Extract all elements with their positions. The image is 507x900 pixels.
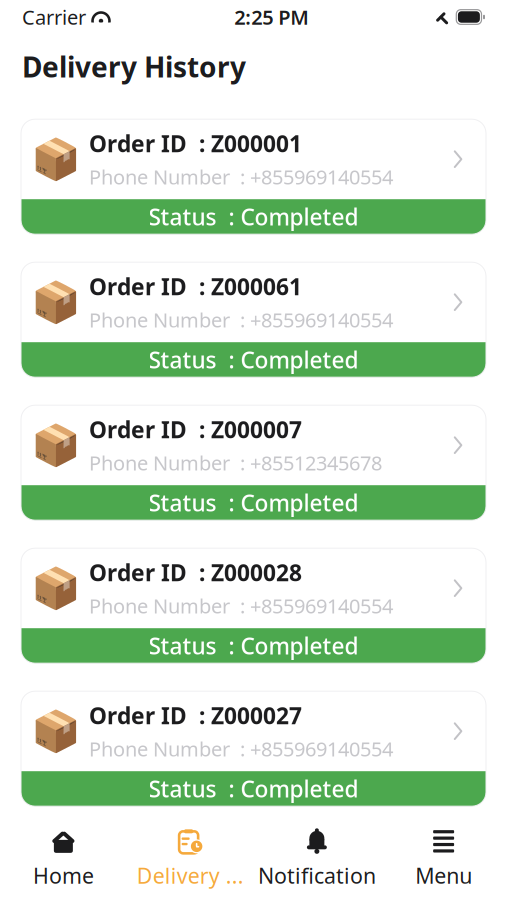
button[interactable]: Notification — [253, 818, 380, 900]
staticText: Status : Completed — [148, 631, 358, 661]
staticText: Phone Number : +855969140554 — [89, 735, 393, 762]
staticText: Order ID : Z000007 — [89, 414, 302, 444]
button[interactable]: Delivery ... — [127, 818, 254, 900]
staticText: Status : Completed — [148, 774, 358, 804]
button[interactable]: 📦 — [21, 548, 486, 663]
button[interactable]: 📦 — [21, 119, 486, 234]
staticText: 📦 — [31, 279, 81, 325]
staticText: Order ID : Z000061 — [89, 271, 302, 301]
staticText: 📦 — [31, 708, 81, 754]
staticText: 📦 — [31, 422, 81, 468]
staticText: Carrier — [22, 4, 86, 30]
staticText: Menu — [415, 861, 472, 890]
button[interactable]: Menu — [380, 818, 507, 900]
staticText: Status : Completed — [148, 488, 358, 518]
staticText: Order ID : Z000028 — [89, 557, 302, 587]
staticText: Phone Number : +855969140554 — [89, 163, 393, 190]
staticText: Phone Number : +855969140554 — [89, 592, 393, 619]
staticText: 📦 — [31, 136, 81, 182]
staticText: Order ID : Z000001 — [89, 128, 302, 158]
staticText: Notification — [258, 861, 376, 890]
staticText: Home — [33, 861, 94, 890]
button[interactable]: 📦 — [21, 405, 486, 520]
staticText: Phone Number : +85512345678 — [89, 449, 382, 476]
staticText: Status : Completed — [148, 345, 358, 375]
staticText: Order ID : Z000027 — [89, 700, 302, 730]
button[interactable]: Home — [0, 818, 127, 900]
staticText: Delivery History — [22, 48, 246, 85]
staticText: 2:25 PM — [234, 4, 309, 30]
button[interactable]: 📦 — [21, 691, 486, 806]
staticText: Delivery ... — [137, 861, 244, 890]
staticText: Phone Number : +855969140554 — [89, 306, 393, 333]
button[interactable]: 📦 — [21, 262, 486, 377]
staticText: Status : Completed — [148, 202, 358, 232]
staticText: 📦 — [31, 565, 81, 611]
